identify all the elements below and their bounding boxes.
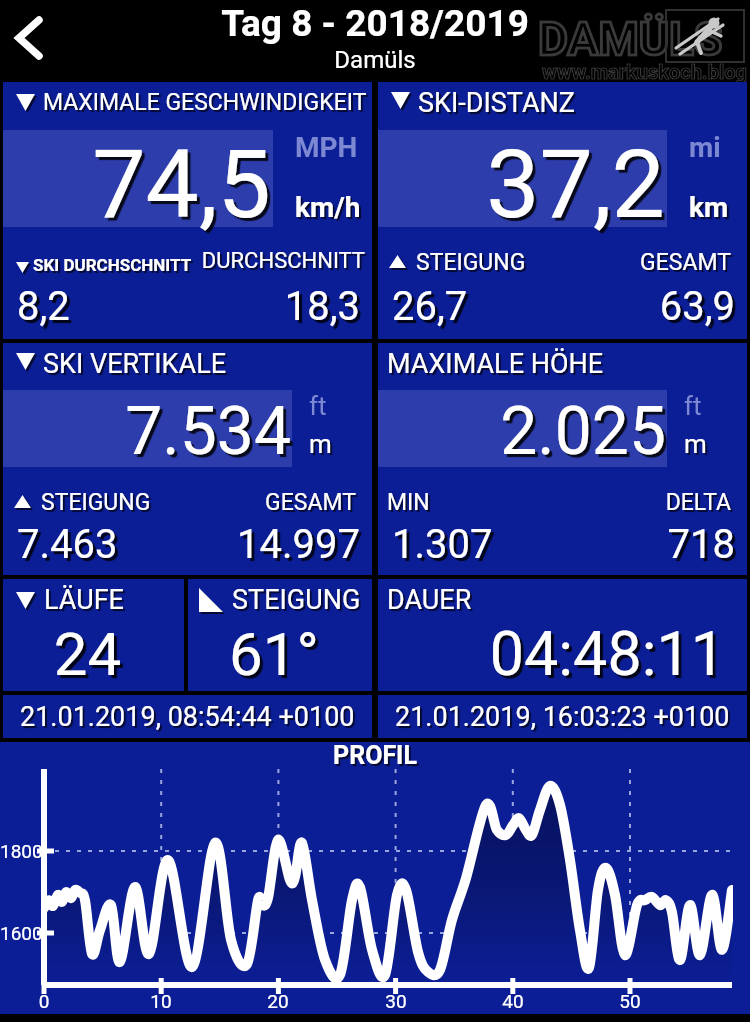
staticText: SKI VERTIKALE — [43, 348, 227, 380]
button[interactable]: PROFIL — [0, 742, 750, 1014]
staticText: mi — [689, 131, 721, 164]
staticText: GESAMT — [3, 489, 356, 516]
staticText: MAXIMALE GESCHWINDIGKEIT — [43, 89, 367, 116]
button[interactable]: DAUER — [378, 579, 747, 691]
staticText: 30 — [366, 990, 426, 1016]
button[interactable]: LÄUFE — [3, 579, 184, 691]
staticText: m — [684, 429, 707, 459]
staticText: 18,3 — [3, 283, 360, 330]
staticText: ft — [684, 391, 702, 421]
staticText: STEIGUNG — [41, 489, 151, 516]
staticText: Tag 8 - 2018/2019 — [0, 2, 750, 45]
staticText: STEIGUNG — [232, 584, 361, 616]
button[interactable]: SKI-DISTANZ — [378, 82, 747, 339]
staticText: DELTA — [378, 489, 731, 516]
staticText: 7.463 — [17, 521, 118, 568]
staticText: MIN — [387, 489, 430, 516]
staticText: 40 — [483, 990, 543, 1016]
staticText: 718 — [378, 521, 735, 568]
staticText: 1600 — [0, 922, 60, 948]
staticText: ft — [309, 391, 327, 421]
staticText: DAMÜLS — [538, 12, 723, 66]
staticText: m — [309, 429, 332, 459]
staticText: 50 — [600, 990, 660, 1016]
staticText: 63,9 — [378, 283, 735, 330]
button[interactable]: 21.01.2019, 08:54:44 +0100 — [3, 695, 372, 738]
staticText: 14.997 — [3, 521, 360, 568]
staticText: GESAMT — [378, 249, 731, 276]
staticText: 61° — [198, 619, 350, 689]
staticText: LÄUFE — [44, 584, 124, 616]
staticText: 1.307 — [392, 521, 493, 568]
staticText: www.markuskoch.blog — [542, 60, 747, 83]
staticText: 24 — [13, 619, 162, 689]
staticText: MPH — [295, 131, 358, 164]
staticText: 04:48:11 — [388, 618, 725, 689]
button[interactable]: MAXIMALE HÖHE — [378, 343, 747, 575]
button[interactable]: MAXIMALE GESCHWINDIGKEIT — [3, 82, 372, 339]
button[interactable]: Back — [0, 0, 80, 80]
staticText: 20 — [248, 990, 308, 1016]
staticText: 8,2 — [17, 283, 70, 330]
staticText: 21.01.2019, 16:03:23 +0100 — [395, 701, 730, 733]
staticText: DURCHSCHNITT — [3, 248, 365, 274]
staticText: SKI-DISTANZ — [418, 87, 575, 119]
staticText: SKI DURCHSCHNITT — [33, 255, 192, 275]
staticText: 26,7 — [392, 283, 468, 330]
staticText: 37,2 — [378, 129, 665, 240]
staticText: DAUER — [387, 584, 472, 616]
staticText: MAXIMALE HÖHE — [387, 348, 604, 380]
staticText: 74,5 — [3, 129, 271, 240]
staticText: km — [689, 191, 729, 224]
button[interactable]: 21.01.2019, 16:03:23 +0100 — [378, 695, 747, 738]
staticText: STEIGUNG — [416, 249, 526, 276]
staticText: 10 — [131, 990, 191, 1016]
staticText: 21.01.2019, 08:54:44 +0100 — [20, 701, 355, 733]
staticText: Damüls — [0, 46, 750, 74]
staticText: km/h — [295, 191, 361, 224]
staticText: PROFIL — [0, 741, 750, 770]
staticText: 0 — [14, 990, 74, 1016]
staticText: 7.534 — [3, 393, 291, 470]
staticText: 1800 — [0, 840, 60, 866]
staticText: 2.025 — [378, 393, 666, 470]
button[interactable]: STEIGUNG — [188, 579, 372, 691]
button[interactable]: SKI VERTIKALE — [3, 343, 372, 575]
